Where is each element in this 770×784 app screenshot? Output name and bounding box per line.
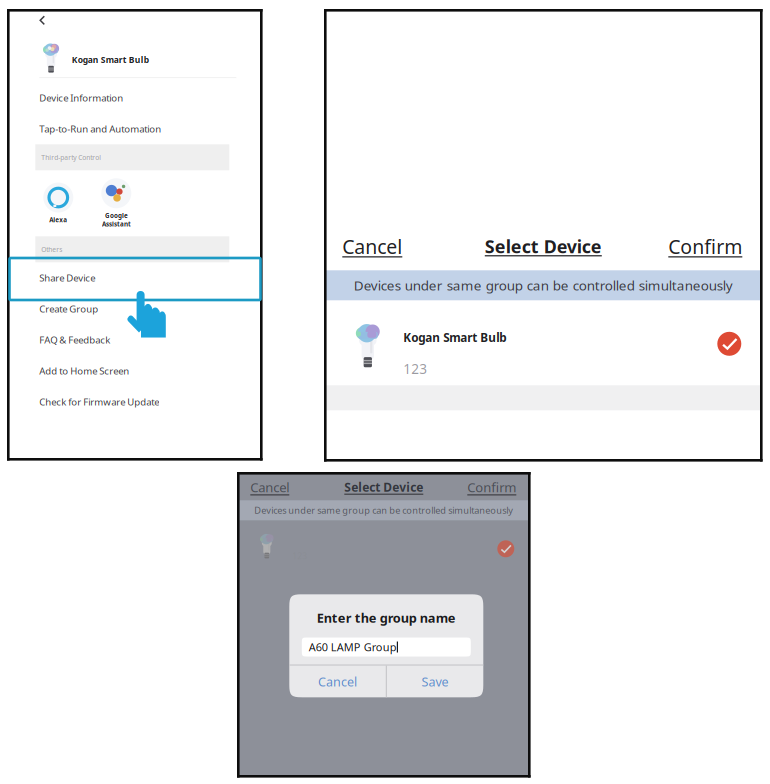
button[interactable]: Cancel bbox=[342, 233, 402, 257]
staticText: Kogan Smart Bulb bbox=[403, 329, 506, 345]
button[interactable]: Create Group bbox=[8, 293, 261, 324]
staticText: Cancel bbox=[342, 233, 402, 260]
button[interactable]: Check for Firmware Update bbox=[8, 386, 261, 417]
staticText: FAQ & Feedback bbox=[39, 333, 110, 346]
button[interactable]: Tap-to-Run and Automation bbox=[8, 113, 261, 144]
button[interactable]: Back bbox=[8, 10, 261, 30]
button[interactable]: Save bbox=[387, 665, 483, 697]
staticText: Select Device bbox=[344, 479, 423, 495]
staticText: Enter the group name bbox=[317, 609, 456, 626]
staticText: Add to Home Screen bbox=[39, 364, 129, 377]
staticText: Confirm bbox=[668, 233, 742, 260]
staticText: 123 bbox=[403, 359, 427, 378]
staticText: Devices under same group can be controll… bbox=[354, 276, 733, 294]
button[interactable]: Select Device bbox=[485, 234, 602, 256]
staticText: Kogan Smart Bulb bbox=[72, 54, 149, 66]
button[interactable]: Add to Home Screen bbox=[8, 355, 261, 386]
button[interactable]: Device Information bbox=[8, 82, 261, 113]
button[interactable]: Confirm bbox=[467, 478, 516, 495]
staticText: Google Assistant bbox=[102, 211, 131, 228]
staticText: Third-party Control bbox=[41, 153, 101, 162]
staticText: Others bbox=[41, 245, 62, 254]
button[interactable]: Cancel bbox=[289, 665, 386, 697]
button[interactable]: Confirm bbox=[668, 233, 742, 257]
staticText: Create Group bbox=[39, 302, 98, 315]
staticText: Confirm bbox=[467, 478, 516, 496]
staticText: A60 LAMP Group bbox=[309, 640, 397, 654]
button[interactable]: Cancel bbox=[250, 478, 289, 495]
button[interactable]: FAQ & Feedback bbox=[8, 324, 261, 355]
staticText: Device Information bbox=[39, 91, 123, 104]
staticText: Share Device bbox=[39, 271, 95, 284]
staticText: Check for Firmware Update bbox=[39, 395, 159, 408]
staticText: Alexa bbox=[49, 215, 67, 224]
staticText: Cancel bbox=[318, 673, 357, 690]
staticText: Select Device bbox=[485, 234, 602, 258]
staticText: Tap-to-Run and Automation bbox=[39, 122, 161, 135]
staticText: Devices under same group can be controll… bbox=[254, 504, 513, 516]
button[interactable]: Share Device bbox=[8, 262, 261, 293]
button[interactable]: Select Device bbox=[344, 479, 423, 495]
staticText: Save bbox=[422, 673, 449, 690]
staticText: Cancel bbox=[250, 478, 289, 496]
